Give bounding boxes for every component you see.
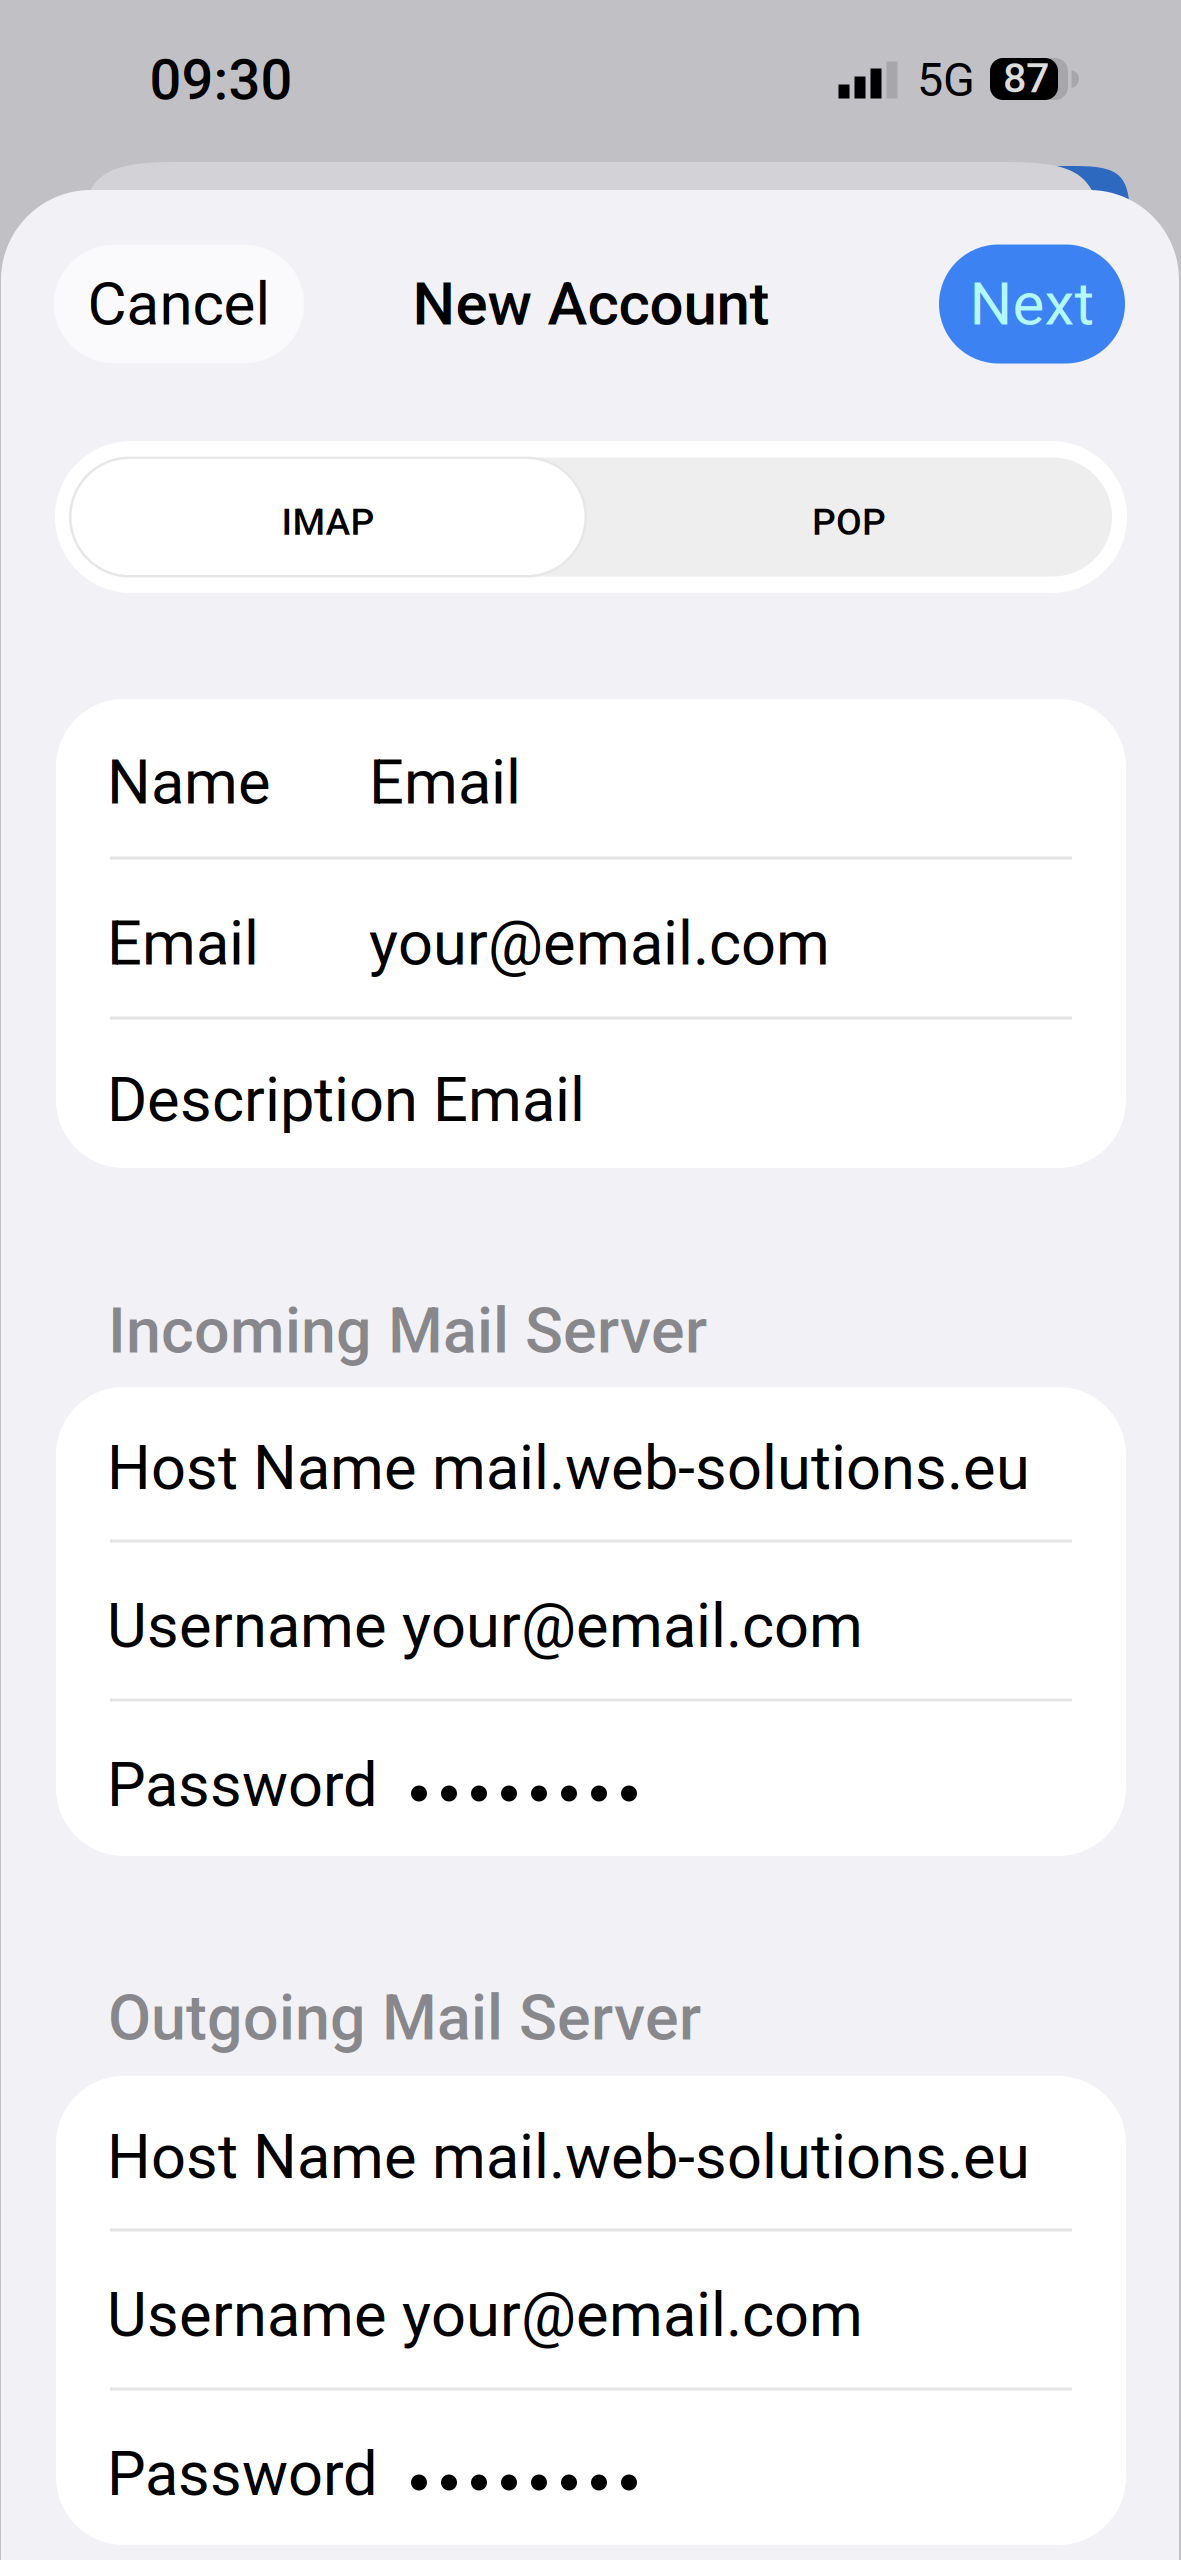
staticText: Host Name <box>107 2121 417 2193</box>
staticText: Name <box>107 747 271 818</box>
staticText: Host Name <box>107 1432 417 1504</box>
staticText: your@email.com <box>402 2279 863 2351</box>
button[interactable]: Username <box>56 2231 1126 2387</box>
staticText: 5G <box>917 53 975 107</box>
button[interactable]: Description <box>56 1019 1126 1169</box>
staticText: New Account <box>412 269 769 339</box>
button[interactable]: Name <box>56 697 1126 856</box>
button[interactable]: Email <box>56 859 1126 1016</box>
staticText: Outgoing Mail Server <box>108 1981 701 2055</box>
staticText: Cancel <box>87 269 270 339</box>
staticText: Email <box>433 1064 585 1136</box>
button[interactable]: Username <box>56 1542 1126 1698</box>
staticText: Username <box>107 2279 387 2351</box>
staticText: mail.web-solutions.eu <box>432 1432 1030 1504</box>
staticText: 09:30 <box>149 47 292 113</box>
staticText: Email <box>369 747 521 818</box>
staticText: mail.web-solutions.eu <box>432 2121 1030 2193</box>
button[interactable]: Host Name <box>56 1385 1126 1539</box>
button[interactable]: Host Name <box>56 2074 1126 2228</box>
button[interactable]: POP <box>583 446 1114 598</box>
staticText: Password <box>107 2438 378 2510</box>
staticText: 87 <box>1003 54 1049 102</box>
button[interactable]: IMAP <box>62 446 593 598</box>
button[interactable]: Password <box>56 2390 1126 2546</box>
button[interactable]: Next <box>939 244 1125 363</box>
staticText: Username <box>107 1590 387 1662</box>
staticText: Email <box>107 908 259 979</box>
staticText: your@email.com <box>402 1590 863 1662</box>
staticText: Next <box>969 269 1094 339</box>
staticText: Incoming Mail Server <box>108 1294 707 1368</box>
staticText: POP <box>812 500 886 544</box>
staticText: Password <box>107 1749 378 1821</box>
staticText: Description <box>107 1064 418 1136</box>
button[interactable]: Password <box>56 1701 1126 1857</box>
staticText: your@email.com <box>369 908 830 979</box>
button[interactable]: Cancel <box>54 245 304 363</box>
staticText: IMAP <box>281 500 374 544</box>
